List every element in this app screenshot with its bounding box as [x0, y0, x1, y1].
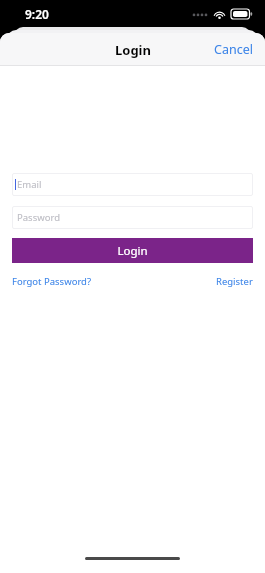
button[interactable]: Login — [12, 238, 253, 263]
button[interactable]: Email — [12, 173, 253, 196]
button[interactable]: Password — [12, 206, 253, 229]
button[interactable]: Cancel — [202, 35, 265, 64]
staticText: Login — [117, 243, 148, 259]
button[interactable]: Forgot Password? — [12, 272, 92, 291]
staticText: Register — [216, 275, 253, 288]
staticText: Password — [17, 211, 60, 224]
staticText: Email — [17, 178, 42, 191]
button[interactable]: Register — [216, 272, 253, 291]
staticText: Cancel — [214, 41, 253, 58]
staticText: Forgot Password? — [12, 275, 92, 288]
staticText: Login — [115, 41, 151, 59]
staticText: 9:20 — [25, 6, 49, 22]
